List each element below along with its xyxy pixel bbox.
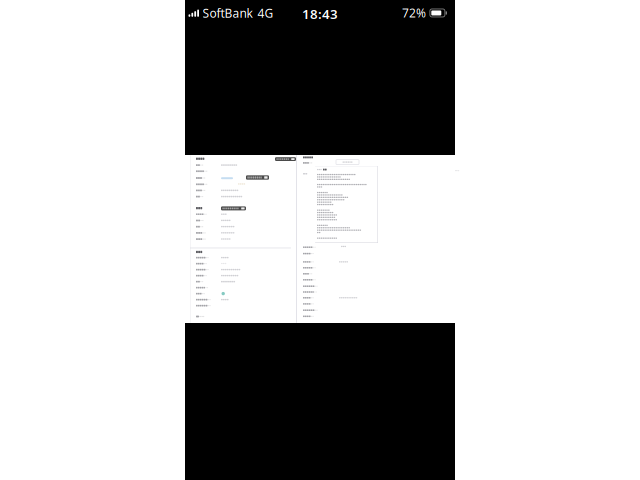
staticText: 72% [402, 5, 426, 21]
staticText: SoftBank [202, 5, 252, 21]
staticText: 4G [257, 5, 273, 21]
button[interactable]: Action [246, 175, 269, 180]
button[interactable]: Action [221, 206, 246, 210]
button[interactable]: Action [275, 157, 296, 161]
staticText: 18:43 [302, 5, 338, 23]
